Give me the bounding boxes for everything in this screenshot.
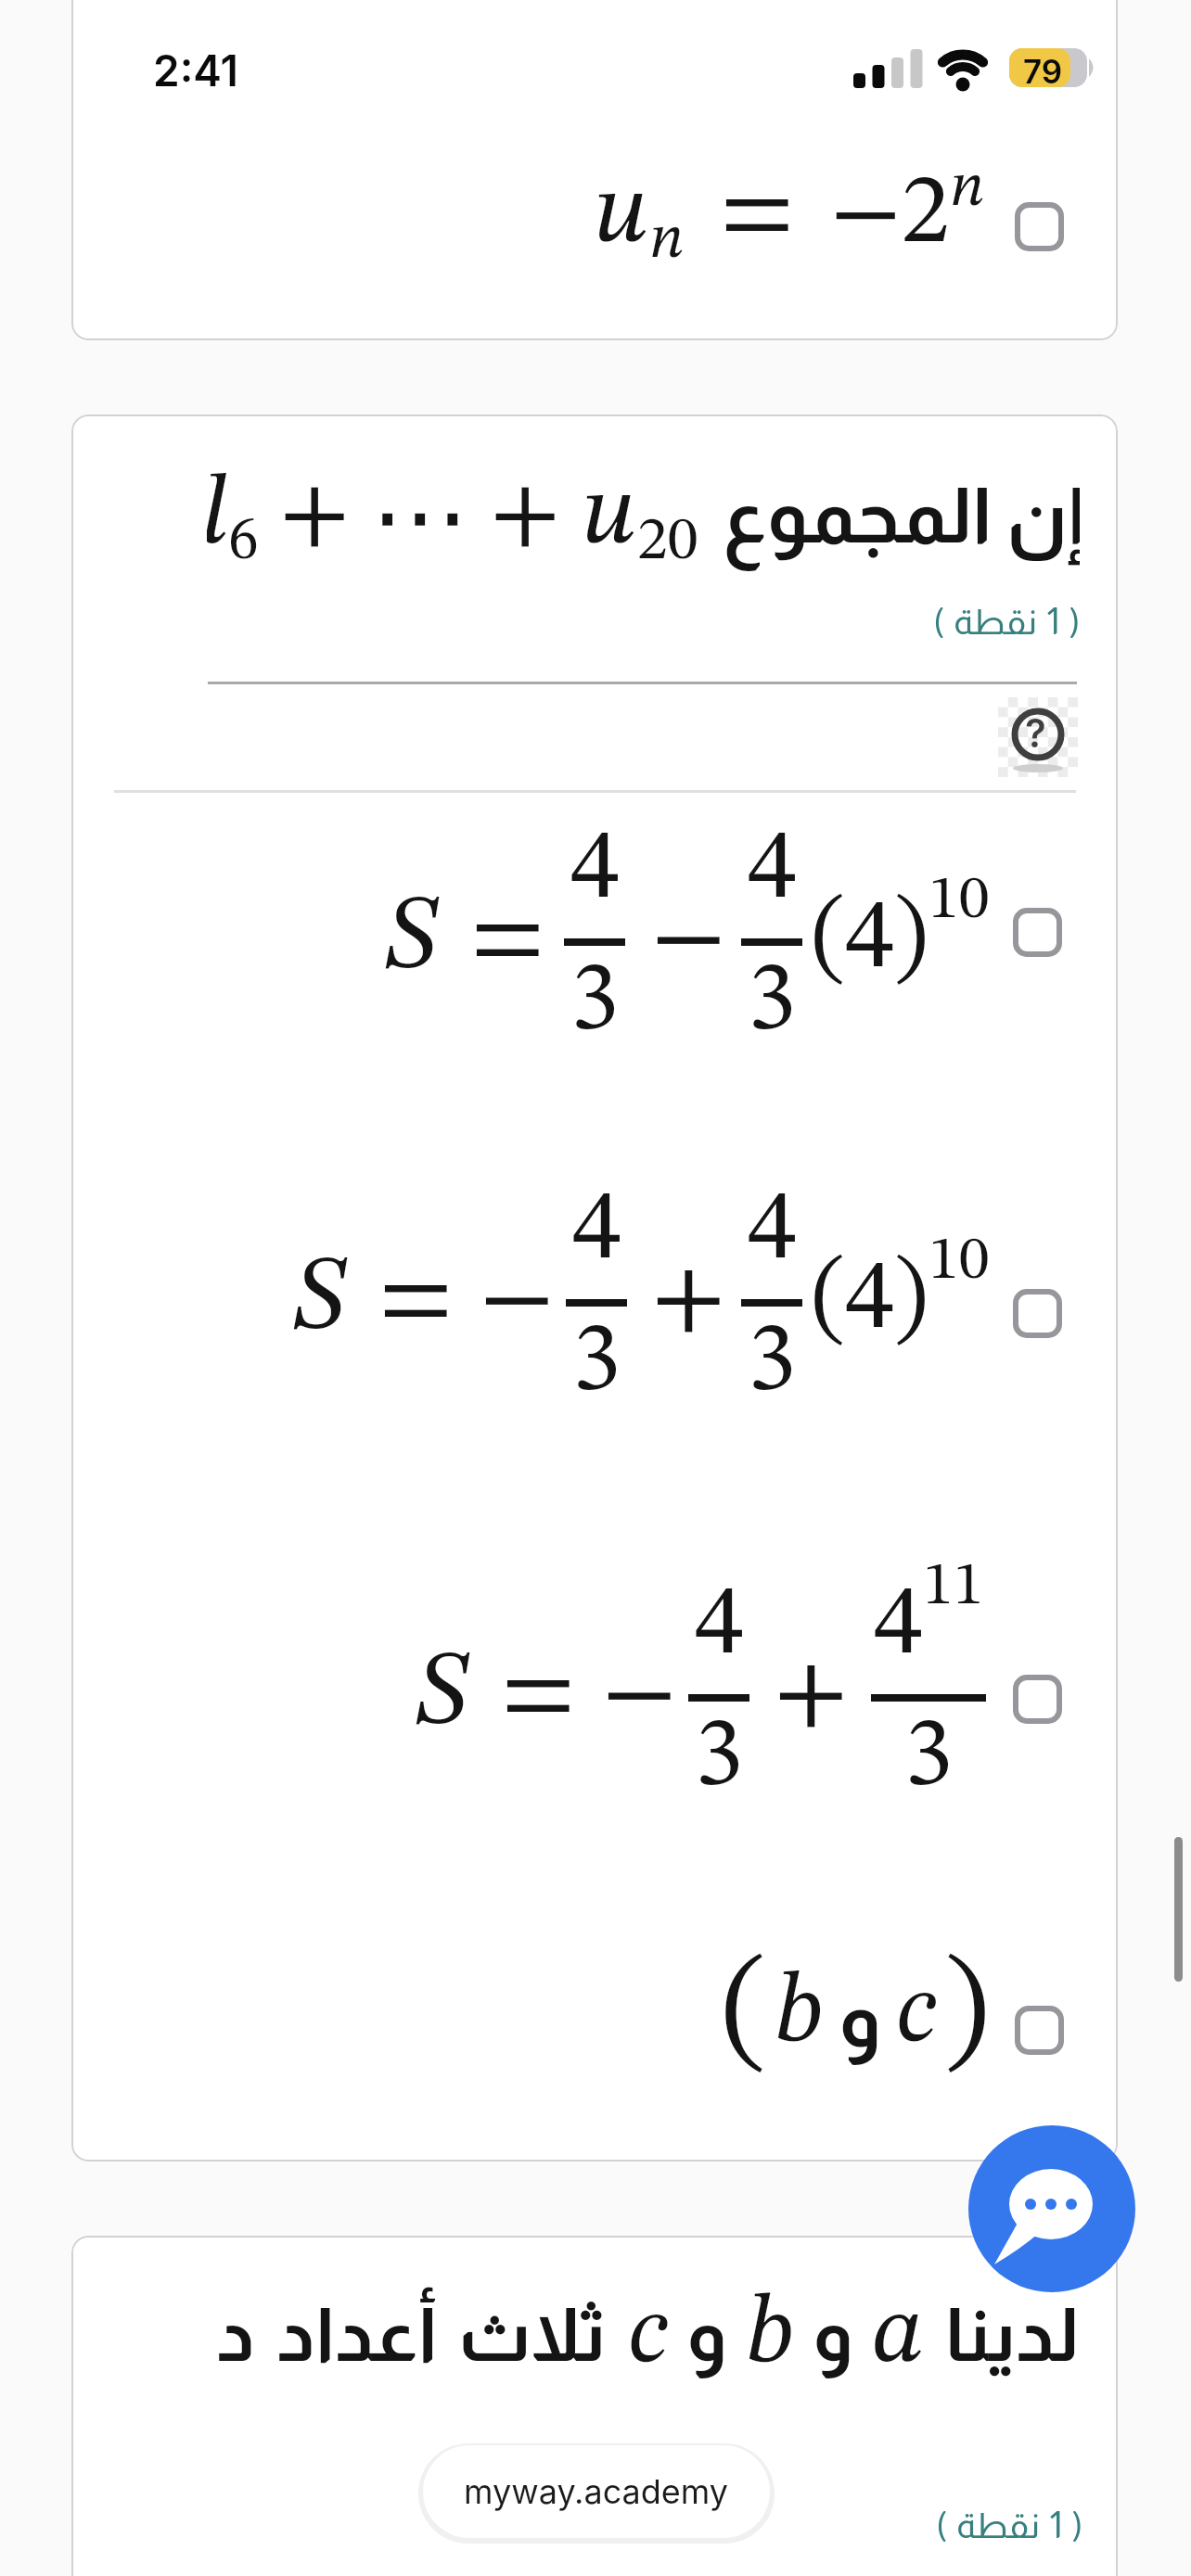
staticText: u bbox=[594, 166, 649, 264]
staticText: إن المجموع bbox=[723, 474, 1080, 559]
staticText: لدينا bbox=[945, 2294, 1080, 2377]
staticText: ( bbox=[722, 1949, 767, 2079]
staticText: أعداد bbox=[276, 2294, 438, 2377]
staticText: myway.academy bbox=[464, 2471, 729, 2512]
staticText: ? bbox=[1025, 709, 1046, 757]
button[interactable] bbox=[968, 2125, 1135, 2292]
staticText: 3 bbox=[748, 953, 797, 1052]
staticText: c bbox=[628, 2287, 668, 2384]
staticText: + bbox=[279, 467, 351, 566]
staticText: + bbox=[651, 1249, 726, 1353]
staticText: u bbox=[582, 467, 637, 566]
staticText: نقطة bbox=[954, 603, 1037, 642]
staticText: + bbox=[774, 1644, 849, 1748]
staticText: و bbox=[686, 2294, 727, 2377]
staticText: و bbox=[839, 1976, 881, 2063]
staticText: 11 bbox=[923, 1557, 984, 1618]
staticText: − bbox=[651, 888, 726, 992]
button[interactable] bbox=[1013, 1289, 1062, 1338]
staticText: n bbox=[950, 159, 985, 220]
staticText: S bbox=[414, 1644, 469, 1748]
staticText: 10 bbox=[928, 1231, 990, 1293]
staticText: = bbox=[501, 1644, 576, 1748]
button[interactable] bbox=[1015, 2006, 1064, 2055]
staticText: نقطة bbox=[956, 2506, 1040, 2545]
staticText: S bbox=[291, 1249, 347, 1353]
staticText: 3 bbox=[695, 1709, 744, 1807]
staticText: ) bbox=[944, 1949, 990, 2079]
staticText: 3 bbox=[748, 1314, 797, 1412]
staticText: a bbox=[872, 2287, 925, 2384]
staticText: 4 bbox=[572, 1182, 621, 1281]
staticText: = bbox=[378, 1249, 454, 1353]
button[interactable]: u bbox=[594, 163, 985, 267]
staticText: 4 bbox=[874, 1577, 923, 1676]
button[interactable]: S bbox=[291, 1197, 990, 1405]
staticText: 10 bbox=[928, 871, 990, 932]
staticText: 4 bbox=[695, 1577, 744, 1676]
staticText: − bbox=[602, 1644, 677, 1748]
staticText: 4 bbox=[748, 1182, 797, 1281]
staticText: (4) bbox=[812, 1252, 928, 1350]
staticText: 1 bbox=[1046, 601, 1060, 643]
staticText: c bbox=[896, 1965, 937, 2063]
staticText: ثلاث bbox=[458, 2294, 608, 2377]
staticText: = bbox=[470, 888, 545, 992]
staticText: b bbox=[775, 1965, 824, 2063]
staticText: = bbox=[720, 163, 795, 267]
staticText: 4 bbox=[570, 822, 620, 920]
staticText: S bbox=[383, 888, 439, 992]
staticText: n bbox=[649, 210, 685, 272]
staticText: 2:41 bbox=[153, 45, 238, 96]
staticText: و bbox=[813, 2294, 853, 2377]
button[interactable]: S bbox=[383, 836, 990, 1044]
button[interactable] bbox=[1013, 1675, 1062, 1724]
staticText: ) bbox=[1071, 2505, 1083, 2546]
button[interactable]: ( bbox=[722, 1949, 990, 2079]
staticText: ( bbox=[933, 601, 945, 643]
staticText: د bbox=[216, 2294, 256, 2377]
staticText: ( bbox=[936, 2505, 948, 2546]
staticText: 3 bbox=[904, 1709, 954, 1807]
button[interactable]: myway.academy bbox=[423, 2445, 770, 2538]
staticText: −2 bbox=[830, 166, 950, 264]
staticText: b bbox=[746, 2287, 794, 2384]
staticText: 6 bbox=[228, 512, 259, 571]
button[interactable]: S bbox=[414, 1592, 990, 1800]
staticText: l bbox=[207, 467, 228, 566]
staticText: 79 bbox=[1023, 52, 1063, 91]
button[interactable] bbox=[1013, 908, 1062, 957]
staticText: ⋯ bbox=[371, 460, 469, 571]
staticText: ) bbox=[1069, 601, 1081, 643]
staticText: + bbox=[490, 467, 561, 566]
staticText: 1 bbox=[1049, 2505, 1063, 2546]
staticText: (4) bbox=[812, 891, 928, 989]
staticText: − bbox=[480, 1249, 555, 1353]
staticText: 20 bbox=[637, 512, 698, 571]
staticText: 4 bbox=[748, 822, 797, 920]
staticText: 3 bbox=[572, 1314, 621, 1412]
button[interactable] bbox=[1015, 202, 1064, 251]
staticText: 3 bbox=[570, 953, 620, 1052]
